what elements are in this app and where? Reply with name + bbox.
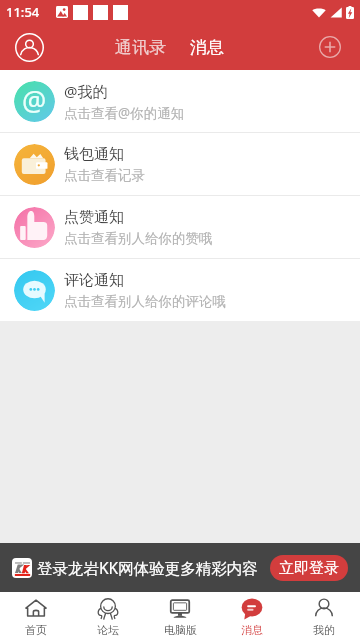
button[interactable]: 立即登录 xyxy=(270,555,348,581)
staticText: 电脑版 xyxy=(164,623,197,637)
staticText: 登录龙岩KK网体验更多精彩内容 xyxy=(37,557,258,578)
button[interactable]: 通讯录 xyxy=(109,32,172,63)
staticText: 通讯录 xyxy=(115,37,166,58)
staticText: 钱包通知 xyxy=(64,145,124,164)
button[interactable]: 钱包通知 xyxy=(0,133,360,195)
button[interactable]: 我的 xyxy=(288,592,360,640)
staticText: 点赞通知 xyxy=(64,208,124,227)
button[interactable]: 点赞通知 xyxy=(0,196,360,258)
button[interactable]: 消息 xyxy=(184,32,230,63)
button[interactable]: 消息 xyxy=(216,592,288,640)
staticText: 点击查看别人给你的赞哦 xyxy=(64,230,213,247)
button[interactable]: 电脑版 xyxy=(144,592,216,640)
button[interactable]: 论坛 xyxy=(72,592,144,640)
button[interactable]: Profile xyxy=(11,29,47,65)
staticText: 评论通知 xyxy=(64,271,124,290)
button[interactable]: Add xyxy=(316,33,344,61)
staticText: 11:54 xyxy=(6,3,40,21)
button[interactable]: 评论通知 xyxy=(0,259,360,321)
staticText: 点击查看@你的通知 xyxy=(64,104,185,122)
button[interactable]: 首页 xyxy=(0,592,72,640)
staticText: 立即登录 xyxy=(279,559,339,578)
staticText: 论坛 xyxy=(97,623,119,637)
staticText: 首页 xyxy=(25,623,47,637)
staticText: 点击查看别人给你的评论哦 xyxy=(64,293,226,310)
staticText: @我的 xyxy=(64,81,108,101)
staticText: 消息 xyxy=(241,623,263,637)
staticText: 点击查看记录 xyxy=(64,167,145,184)
staticText: @ xyxy=(22,82,47,119)
button[interactable]: @ xyxy=(0,70,360,132)
staticText: 我的 xyxy=(313,623,335,637)
staticText: 消息 xyxy=(190,37,224,58)
